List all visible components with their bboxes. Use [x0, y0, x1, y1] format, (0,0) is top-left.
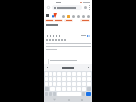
- button[interactable]: Action 1: [76, 14, 80, 18]
- button[interactable]: [52, 35, 54, 37]
- button[interactable]: [54, 19, 63, 22]
- button[interactable]: [45, 82, 48, 86]
- button[interactable]: [52, 13, 57, 18]
- button[interactable]: [49, 82, 52, 86]
- button[interactable]: Mail: [66, 14, 70, 18]
- button[interactable]: Enter: [86, 92, 91, 96]
- button[interactable]: [45, 72, 48, 76]
- button[interactable]: Account: [84, 6, 87, 9]
- button[interactable]: [80, 19, 90, 22]
- button[interactable]: [52, 5, 82, 10]
- button[interactable]: [49, 77, 52, 81]
- button[interactable]: [44, 64, 92, 71]
- button[interactable]: [45, 19, 54, 22]
- button[interactable]: Toggle option: [87, 35, 90, 37]
- button[interactable]: [55, 35, 57, 37]
- button[interactable]: Search: [61, 14, 65, 18]
- button[interactable]: [53, 82, 56, 86]
- button[interactable]: [58, 35, 60, 37]
- button[interactable]: Action 2: [81, 14, 85, 18]
- button[interactable]: Action 0: [71, 14, 75, 18]
- button[interactable]: [64, 19, 73, 22]
- button[interactable]: Home: [66, 97, 71, 102]
- button[interactable]: [49, 35, 51, 37]
- button[interactable]: [49, 72, 52, 76]
- button[interactable]: [45, 77, 48, 81]
- button[interactable]: [53, 72, 56, 76]
- button[interactable]: Recent apps: [79, 97, 84, 102]
- button[interactable]: [53, 77, 56, 81]
- button[interactable]: Back: [52, 97, 57, 102]
- button[interactable]: [46, 35, 48, 37]
- button[interactable]: More options: [88, 5, 91, 10]
- button[interactable]: Close tab: [46, 5, 51, 10]
- button[interactable]: Action 3: [86, 14, 90, 18]
